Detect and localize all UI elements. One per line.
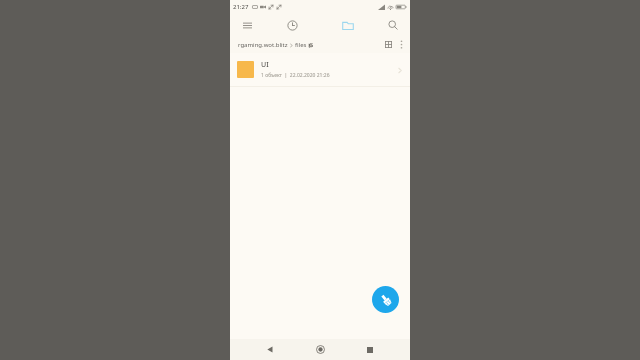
button[interactable]: More options [395, 36, 407, 53]
staticText: 1 объект | 22.02.2020 21:26 [261, 72, 330, 79]
button[interactable]: Clean storage [372, 286, 399, 313]
button[interactable]: Open menu [230, 14, 264, 36]
button[interactable]: Search [376, 14, 410, 36]
button[interactable]: UI [230, 53, 410, 86]
staticText: files [295, 41, 307, 49]
button[interactable]: Open folder [394, 60, 406, 80]
button[interactable]: Recents [357, 339, 383, 360]
staticText: 21:27 [233, 3, 249, 11]
button[interactable]: Change view [381, 36, 395, 53]
button[interactable]: Home [307, 339, 333, 360]
button[interactable]: Recent files [264, 14, 320, 36]
staticText: rgaming.wot.blitz [238, 41, 288, 49]
button[interactable]: Back [257, 339, 283, 360]
staticText: UI [261, 60, 269, 70]
button[interactable]: Browse folders [320, 14, 376, 36]
